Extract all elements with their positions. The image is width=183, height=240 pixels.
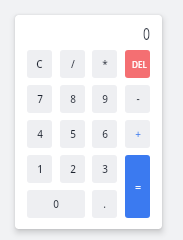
button[interactable]: Clear bbox=[27, 50, 52, 78]
button[interactable]: Divide bbox=[60, 50, 85, 78]
button[interactable]: Equals bbox=[125, 155, 150, 218]
staticText: + bbox=[135, 127, 141, 141]
staticText: . bbox=[103, 197, 106, 211]
staticText: 0 bbox=[53, 197, 59, 211]
staticText: 7 bbox=[37, 92, 43, 106]
staticText: 4 bbox=[37, 127, 43, 141]
staticText: * bbox=[102, 57, 108, 71]
button[interactable]: 8 bbox=[60, 85, 85, 113]
button[interactable]: 1 bbox=[27, 155, 52, 183]
button[interactable]: 6 bbox=[92, 120, 117, 148]
button[interactable]: 4 bbox=[27, 120, 52, 148]
button[interactable]: Plus bbox=[125, 120, 150, 148]
staticText: DEL bbox=[132, 59, 147, 70]
staticText: - bbox=[136, 92, 140, 106]
button[interactable]: Multiply bbox=[92, 50, 117, 78]
staticText: 0 bbox=[143, 22, 150, 45]
button[interactable]: 9 bbox=[92, 85, 117, 113]
staticText: C bbox=[36, 57, 43, 71]
button[interactable]: 2 bbox=[60, 155, 85, 183]
staticText: 1 bbox=[37, 162, 43, 176]
staticText: 5 bbox=[70, 127, 76, 141]
staticText: 8 bbox=[70, 92, 76, 106]
staticText: 2 bbox=[70, 162, 76, 176]
button[interactable]: Minus bbox=[125, 85, 150, 113]
staticText: 6 bbox=[102, 127, 108, 141]
staticText: = bbox=[135, 180, 141, 194]
button[interactable]: 3 bbox=[92, 155, 117, 183]
button[interactable]: 5 bbox=[60, 120, 85, 148]
staticText: / bbox=[71, 57, 75, 71]
button[interactable]: Delete bbox=[125, 50, 150, 78]
button[interactable]: 0 bbox=[27, 190, 85, 218]
button[interactable]: Decimal point bbox=[92, 190, 117, 218]
button[interactable]: 7 bbox=[27, 85, 52, 113]
staticText: 9 bbox=[102, 92, 108, 106]
staticText: 3 bbox=[102, 162, 108, 176]
